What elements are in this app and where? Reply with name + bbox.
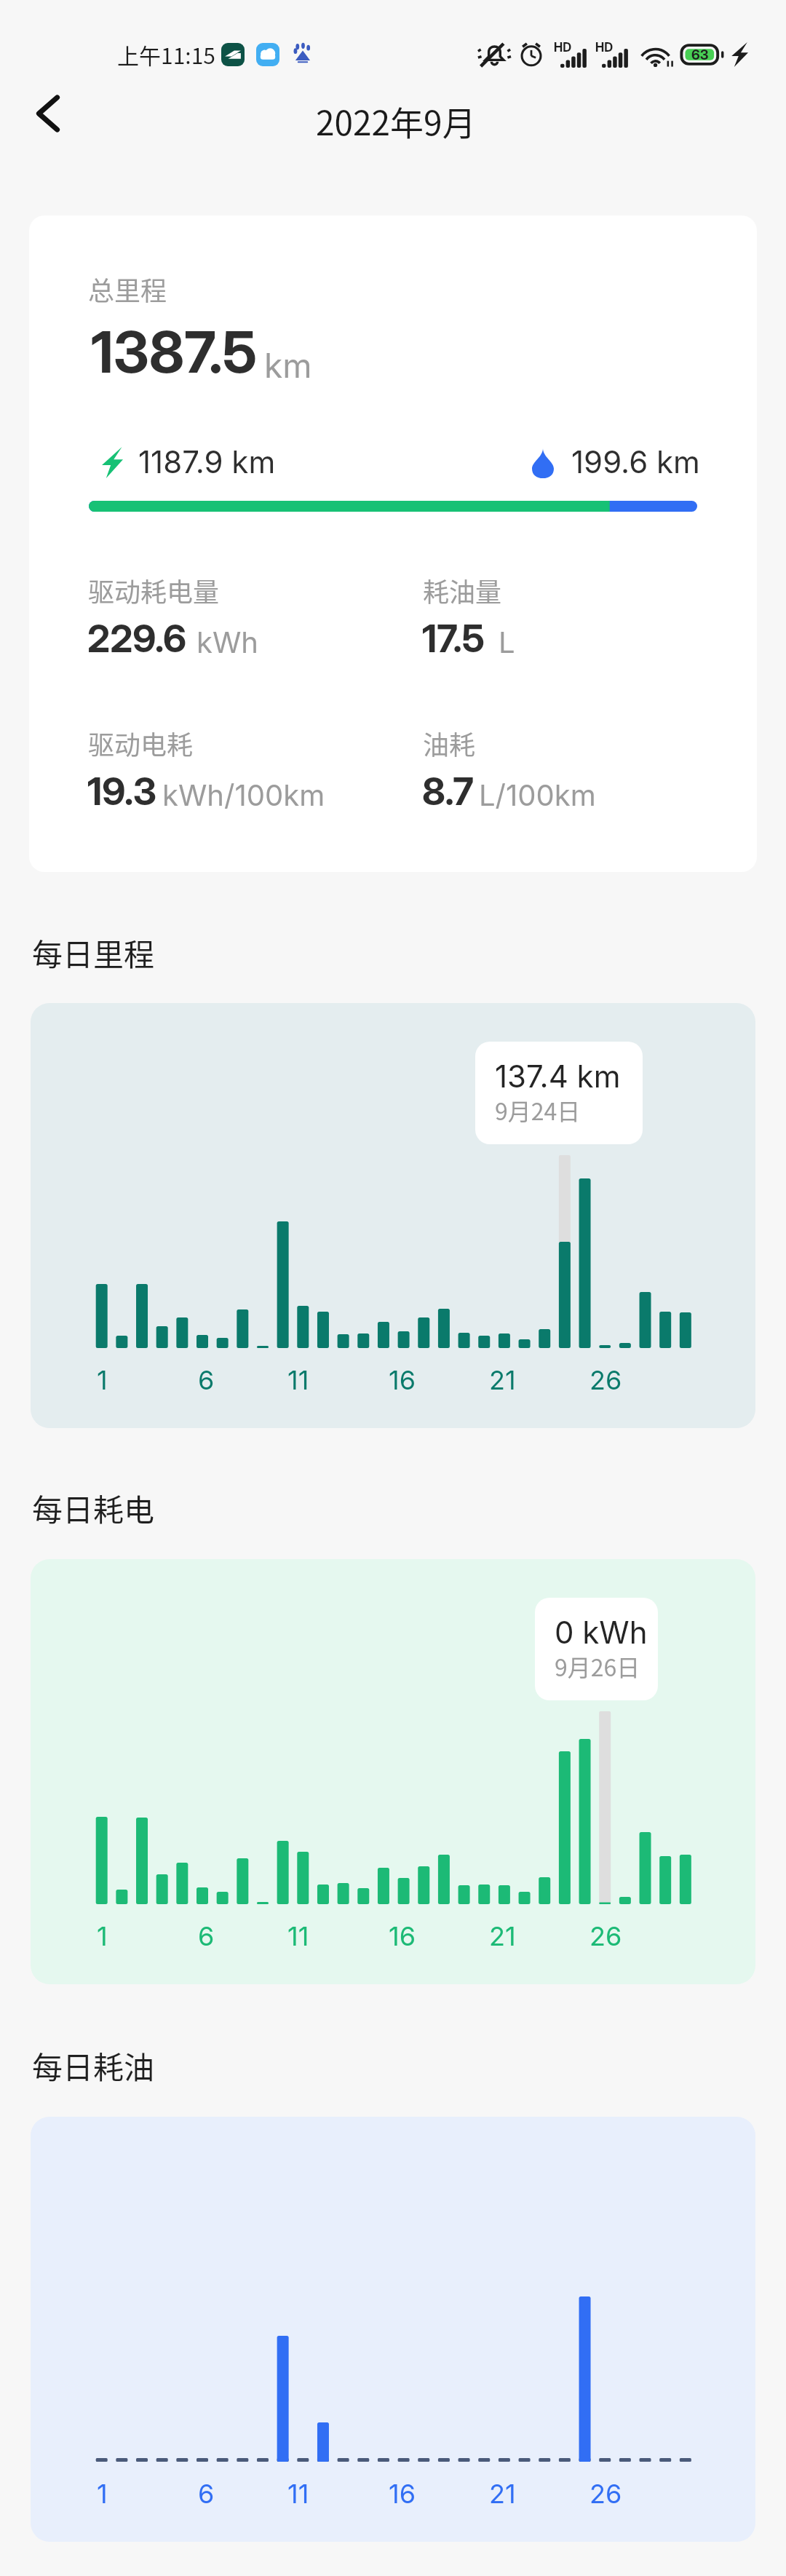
staticText: 11 [287,2478,309,2510]
staticText: L/100km [479,777,596,812]
staticText: 驱动电耗 [88,724,194,762]
staticText: 229.6 [87,616,187,662]
staticText: 上午11:15 [117,39,215,70]
staticText: 6 [198,2478,215,2510]
staticText: 油耗 [423,724,476,762]
staticText: 26 [589,1364,622,1396]
staticText: 17.5 [422,616,485,662]
staticText: 6 [198,1920,215,1952]
staticText: 16 [389,1920,416,1952]
staticText: 每日耗油 [32,2043,155,2088]
staticText: 1187.9 km [138,443,276,480]
staticText: 总里程 [88,270,167,308]
staticText: 11 [287,1364,309,1396]
staticText: 199.6 km [571,443,700,480]
staticText: 26 [589,1920,622,1952]
staticText: 16 [389,1364,416,1396]
staticText: 1387.5 [91,317,257,387]
staticText: 137.4 km [495,1058,621,1095]
staticText: 63 [691,47,709,63]
staticText: kWh [196,625,259,659]
staticText: 26 [589,2478,622,2510]
staticText: 11 [287,1920,309,1952]
staticText: 6 [198,1364,215,1396]
staticText: 21 [489,2478,516,2510]
staticText: 1 [97,1364,108,1396]
staticText: 0 kWh [555,1614,648,1651]
staticText: 9月26日 [555,1649,640,1683]
staticText: 19.3 [87,769,156,815]
staticText: 21 [489,1364,516,1396]
staticText: kWh/100km [162,777,325,812]
staticText: 9月24日 [495,1093,581,1127]
staticText: 8.7 [422,769,474,815]
staticText: HD [595,40,614,55]
staticText: km [264,345,312,386]
staticText: 每日里程 [32,930,155,975]
staticText: HD [554,40,572,55]
staticText: 每日耗电 [32,1486,155,1530]
staticText: 2022年9月 [316,97,476,146]
staticText: 1 [97,2478,108,2510]
staticText: 驱动耗电量 [88,571,220,609]
staticText: L [499,625,515,659]
staticText: 21 [489,1920,516,1952]
staticText: 1 [97,1920,108,1952]
staticText: 16 [389,2478,416,2510]
button[interactable]: Back [17,83,79,144]
staticText: 耗油量 [423,571,502,609]
